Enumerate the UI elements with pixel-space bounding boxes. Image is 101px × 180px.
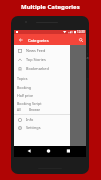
staticText: More news — [69, 123, 87, 128]
staticText: Booking — [17, 85, 31, 90]
staticText: Sports update — [69, 76, 89, 81]
staticText: Topics — [17, 76, 28, 81]
staticText: Latest stories — [69, 51, 89, 56]
button[interactable]: Info — [14, 115, 70, 124]
staticText: 12:30 — [77, 30, 85, 34]
button[interactable]: Back — [15, 34, 26, 45]
staticText: Booking Script — [17, 101, 42, 106]
staticText: All — [17, 108, 21, 112]
staticText: Settings — [26, 125, 41, 130]
button[interactable]: Search — [75, 34, 86, 45]
button[interactable]: News Feed — [14, 46, 70, 55]
staticText: Categories — [28, 38, 49, 43]
staticText: 12 minutes ago — [69, 56, 89, 60]
staticText: News Feed — [26, 48, 46, 53]
button[interactable]: Settings — [14, 123, 70, 132]
staticText: Half price — [17, 93, 34, 98]
staticText: Multiple Categories — [21, 3, 80, 11]
staticText: Browse — [29, 108, 41, 112]
button[interactable]: Bookmarked — [14, 64, 70, 73]
button[interactable]: Top Stories — [14, 55, 70, 64]
staticText: Top Stories — [26, 57, 46, 62]
staticText: Bookmarked — [26, 66, 49, 71]
staticText: Info — [26, 117, 34, 122]
